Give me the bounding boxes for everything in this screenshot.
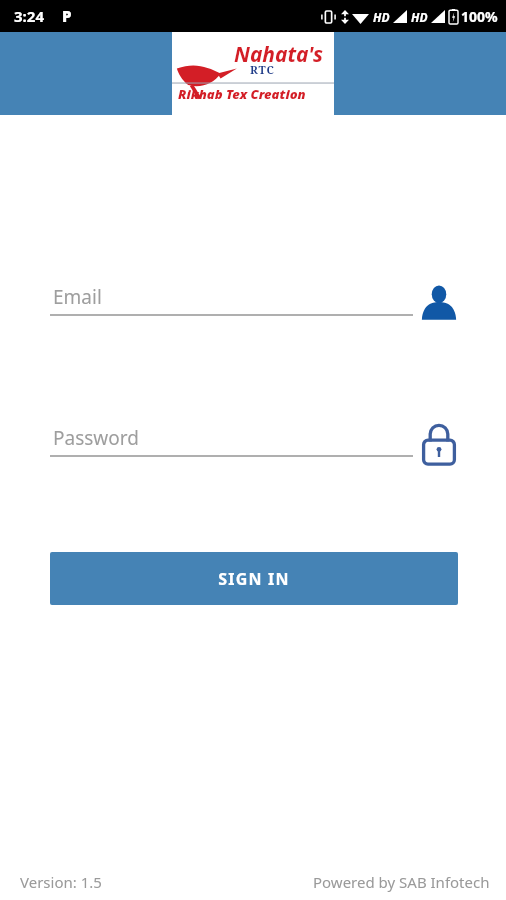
staticText: RTC [250,62,275,77]
staticText: SIGN IN [218,568,290,590]
staticText: Password [53,425,139,451]
button[interactable]: SIGN IN [50,552,458,605]
button[interactable]: Email [0,280,506,332]
staticText: HD [411,9,428,25]
other: User account [417,281,461,325]
staticText: Rikhab Tex Creation [178,85,306,103]
button[interactable]: Password [0,421,506,473]
staticText: Nahata's [234,40,323,69]
staticText: HD [373,9,390,25]
staticText: Version: 1.5 [20,872,102,892]
other: Password [417,421,461,469]
staticText: Email [53,284,102,310]
staticText: Powered by SAB Infotech [313,872,490,892]
staticText: P [62,6,72,26]
staticText: 3:24 [14,6,44,26]
staticText: 100% [461,7,498,26]
